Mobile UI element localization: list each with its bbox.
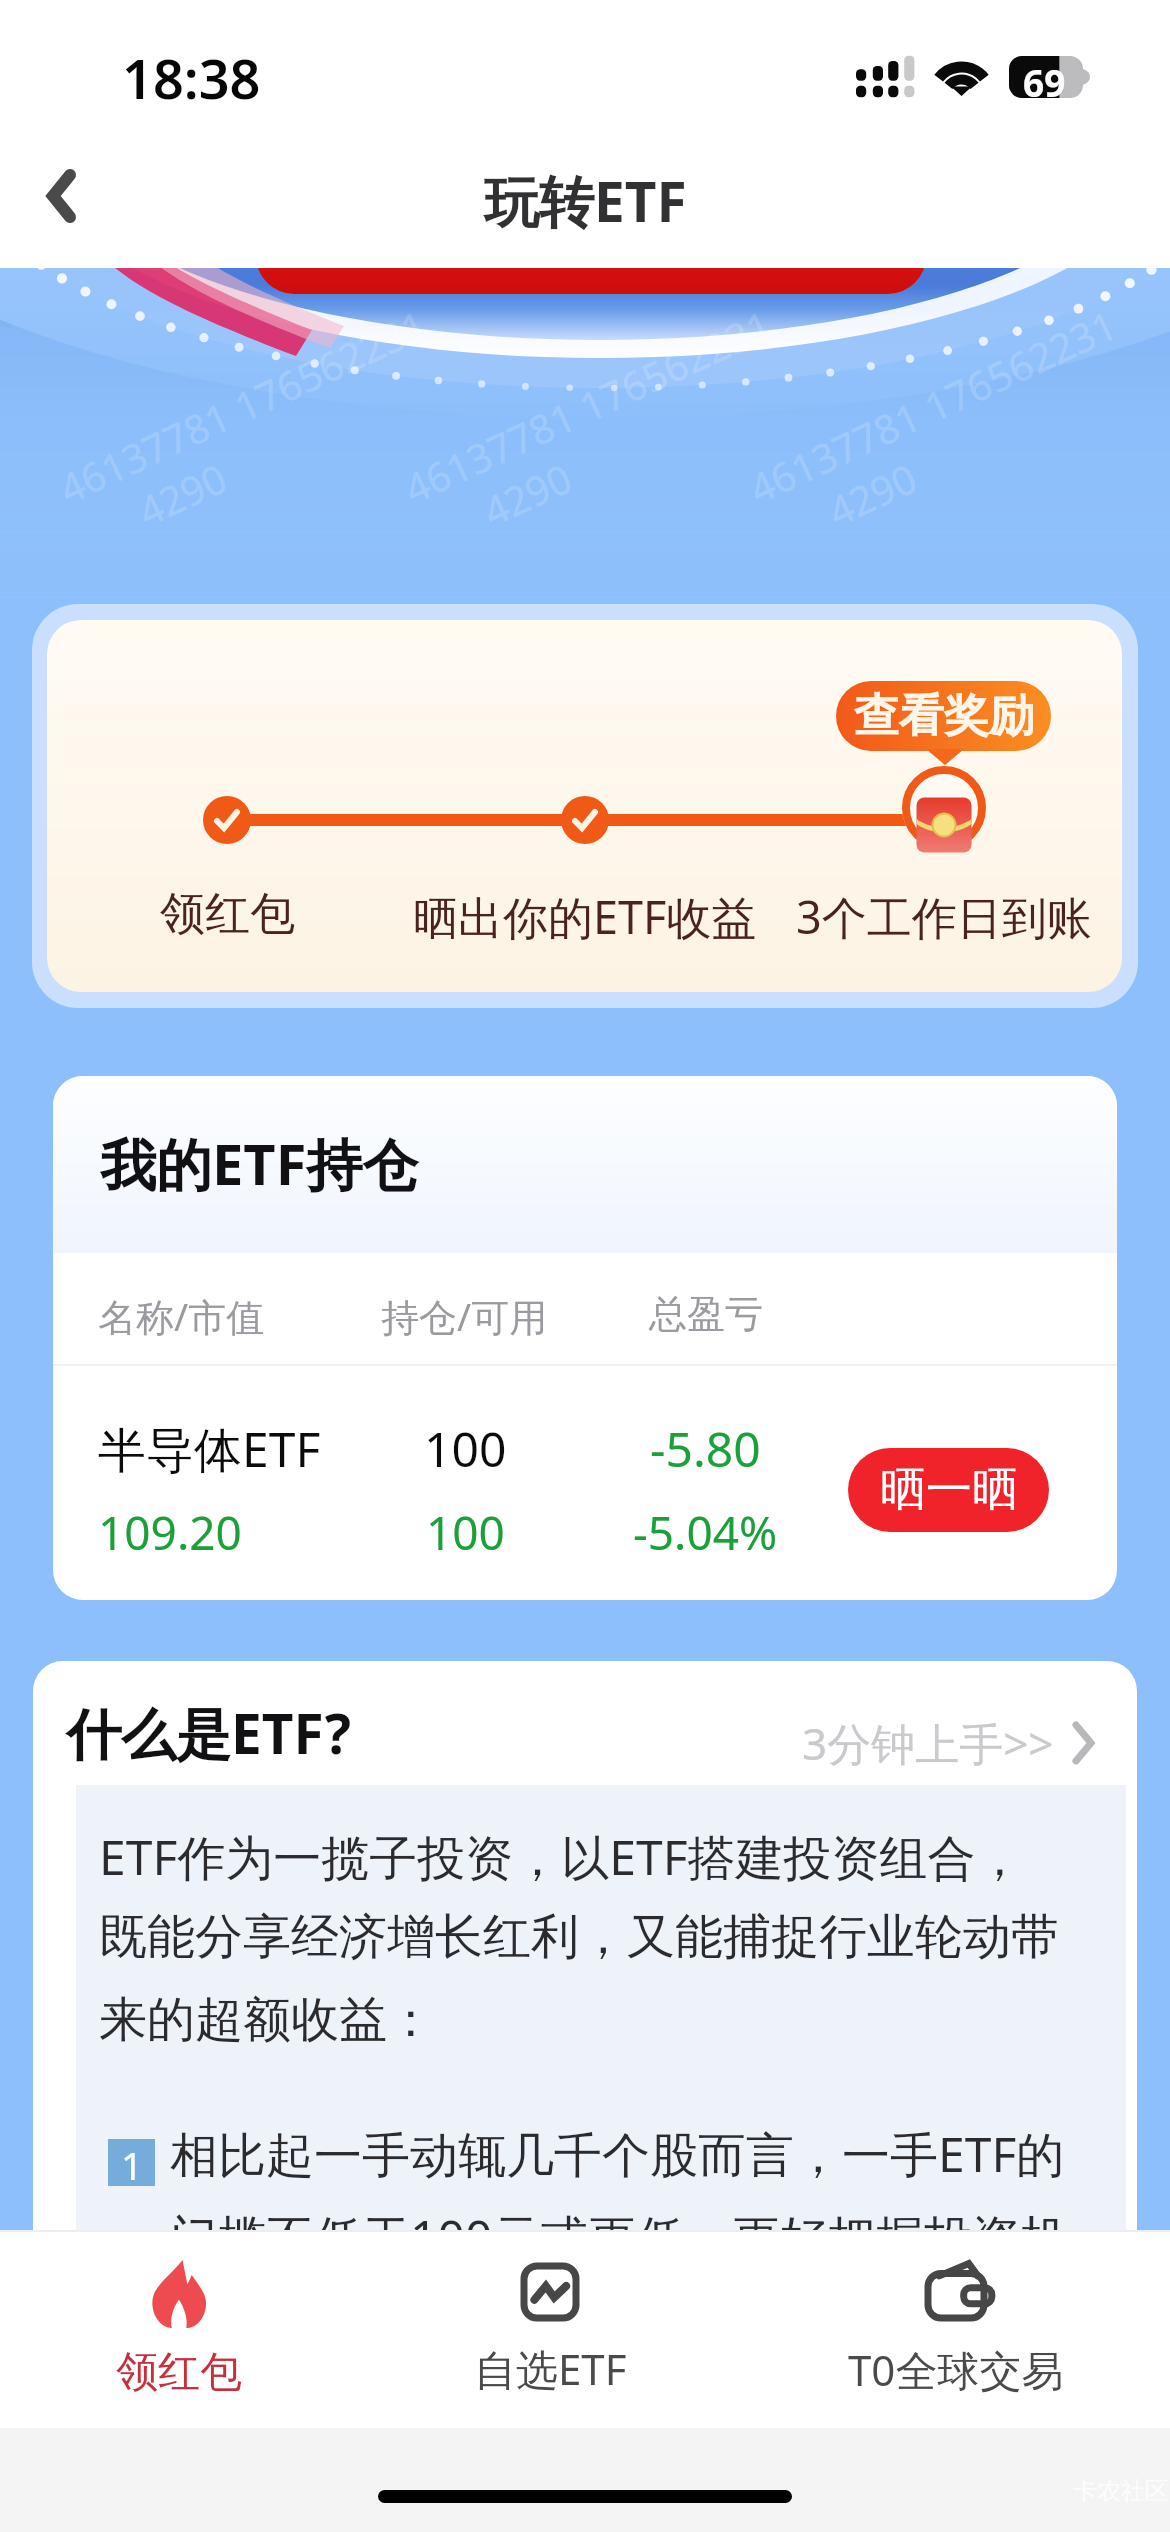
button[interactable]: 自选ETF (400, 2230, 700, 2428)
staticText: 100 (424, 1416, 507, 1481)
staticText: 69 (1023, 57, 1066, 99)
staticText: 持仓/可用 (381, 1290, 548, 1342)
staticText: 玩转ETF (484, 163, 687, 238)
staticText: 109.20 (98, 1501, 242, 1564)
button[interactable]: 领红包 (29, 2230, 329, 2428)
staticText: 46137781 176562231 (740, 297, 1125, 515)
staticText: 4290 (129, 450, 235, 538)
staticText: ETF作为一揽子投资，以ETF搭建投资组合， (99, 1824, 1024, 1890)
staticText: 46137781 176562231 (50, 297, 435, 515)
staticText: 什么是ETF? (66, 1695, 352, 1770)
staticText: 卡农社区 (1073, 2476, 1169, 2506)
staticText: 46137781 176562231 (395, 297, 780, 515)
staticText: 3分钟上手>> (802, 1713, 1054, 1773)
staticText: 相比起一手动辄几千个股而言，一手ETF的 (170, 2121, 1065, 2187)
button[interactable]: 查看奖励 (836, 681, 1051, 751)
button[interactable]: 晒一晒 (848, 1448, 1049, 1532)
staticText: 4290 (819, 450, 925, 538)
staticText: 名称/市值 (98, 1290, 265, 1342)
button[interactable]: Back (19, 154, 103, 238)
staticText: -5.80 (650, 1416, 761, 1481)
staticText: 领红包 (160, 886, 295, 943)
staticText: 晒出你的ETF收益 (413, 886, 757, 947)
button[interactable]: 3分钟上手>> (802, 1713, 1096, 1773)
staticText: 门槛不低于100元或更低，更好把握投资机 (170, 2204, 1069, 2230)
staticText: 总盈亏 (649, 1290, 763, 1338)
staticText: 领红包 (116, 2346, 242, 2399)
staticText: -5.04% (633, 1501, 778, 1564)
staticText: 自选ETF (474, 2340, 627, 2397)
staticText: 来的超额收益： (99, 1990, 435, 2050)
staticText: 18:38 (122, 41, 261, 115)
button[interactable]: T0全球交易 (806, 2230, 1106, 2428)
staticText: 3个工作日到账 (796, 886, 1092, 947)
staticText: 我的ETF持仓 (100, 1125, 419, 1201)
staticText: 100 (426, 1501, 505, 1564)
staticText: 既能分享经济增长红利，又能捕捉行业轮动带 (99, 1907, 1059, 1967)
staticText: 晒一晒 (880, 1461, 1018, 1519)
staticText: 查看奖励 (854, 688, 1034, 745)
staticText: 半导体ETF (98, 1416, 321, 1482)
staticText: 4290 (474, 450, 580, 538)
staticText: 1 (121, 2139, 143, 2186)
staticText: T0全球交易 (848, 2341, 1064, 2398)
